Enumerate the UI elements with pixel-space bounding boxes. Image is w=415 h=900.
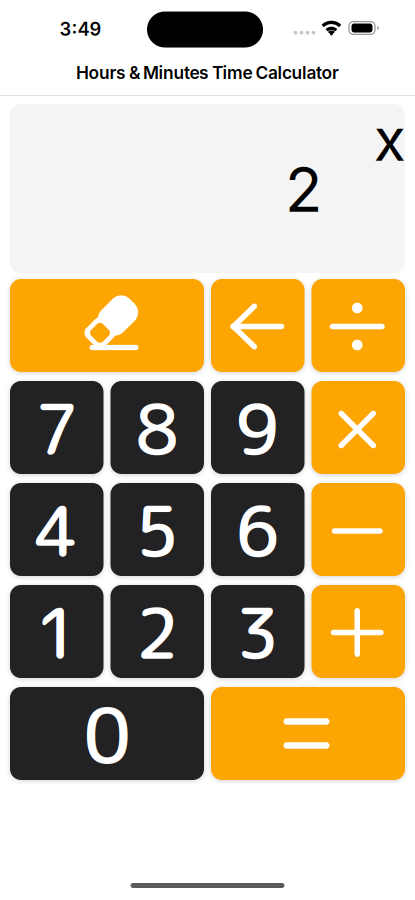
button[interactable]: 9	[211, 381, 304, 474]
button[interactable]: Delete	[211, 279, 304, 372]
button[interactable]: 5	[110, 483, 204, 576]
staticText: 2	[135, 584, 179, 681]
staticText: Hours & Minutes Time Calculator	[76, 62, 339, 83]
staticText: 8	[135, 380, 179, 477]
staticText: 0	[83, 682, 130, 787]
button[interactable]: 8	[110, 381, 204, 474]
staticText: 7	[35, 380, 79, 477]
staticText: 5	[135, 482, 179, 579]
button[interactable]: Subtract	[311, 483, 405, 576]
button[interactable]: 2	[110, 585, 204, 678]
button[interactable]: 6	[211, 483, 304, 576]
button[interactable]: Multiply	[311, 381, 405, 474]
button[interactable]: Divide	[311, 279, 405, 372]
staticText: 1	[35, 584, 79, 681]
button[interactable]: 3	[211, 585, 304, 678]
staticText: 3:49	[59, 18, 101, 40]
staticText: 9	[236, 380, 280, 477]
button[interactable]: Add	[311, 585, 405, 678]
button[interactable]: Clear	[10, 279, 204, 372]
button[interactable]: 1	[10, 585, 103, 678]
staticText: 6	[236, 482, 280, 579]
button[interactable]: 0	[10, 687, 204, 780]
staticText: x	[374, 104, 406, 175]
staticText: 3	[236, 584, 280, 681]
button[interactable]: 4	[10, 483, 103, 576]
staticText: 4	[35, 482, 79, 579]
button[interactable]: 7	[10, 381, 103, 474]
button[interactable]: Equals	[211, 687, 405, 780]
staticText: 2	[285, 152, 322, 226]
